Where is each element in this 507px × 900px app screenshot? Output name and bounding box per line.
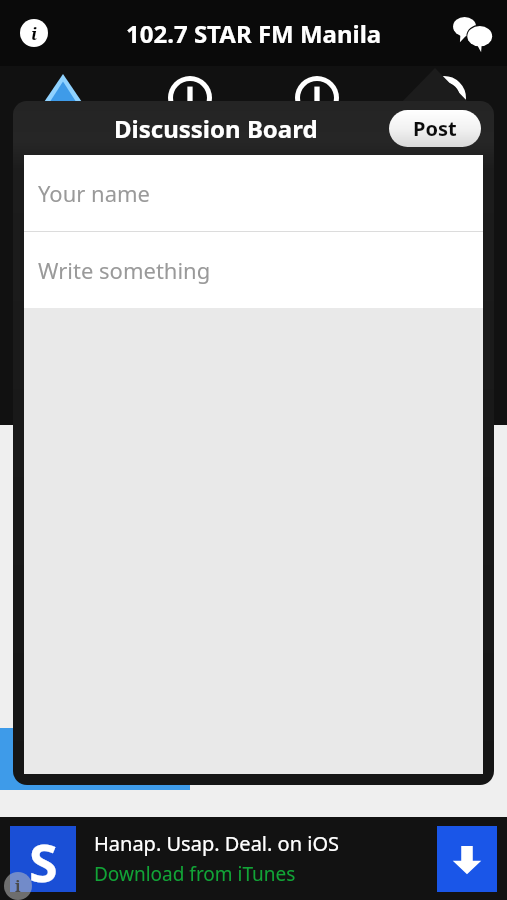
button[interactable]: Clock	[126, 66, 253, 112]
staticText: Hanap. Usap. Deal. on iOS	[94, 830, 339, 857]
button[interactable]: Discussion	[445, 7, 497, 59]
staticText: Download from iTunes	[94, 861, 296, 887]
button[interactable]: Alerts	[253, 66, 380, 112]
button[interactable]: Your name	[24, 155, 483, 231]
staticText: Post	[413, 115, 457, 142]
staticText: Write something	[38, 255, 211, 285]
staticText: S	[29, 826, 58, 892]
button[interactable]: Write something	[24, 232, 483, 308]
button[interactable]: Listen	[0, 66, 126, 112]
staticText: i	[31, 22, 38, 45]
staticText: Your name	[38, 178, 150, 208]
staticText: i	[15, 875, 21, 897]
button[interactable]: Post	[389, 110, 481, 147]
staticText: Discussion Board	[114, 112, 318, 145]
button[interactable]: More	[380, 66, 507, 112]
button[interactable]: Information	[12, 11, 56, 55]
button[interactable]: Download	[437, 826, 497, 892]
button[interactable]: S	[0, 817, 507, 900]
staticText: 102.7 STAR FM Manila	[126, 17, 382, 50]
